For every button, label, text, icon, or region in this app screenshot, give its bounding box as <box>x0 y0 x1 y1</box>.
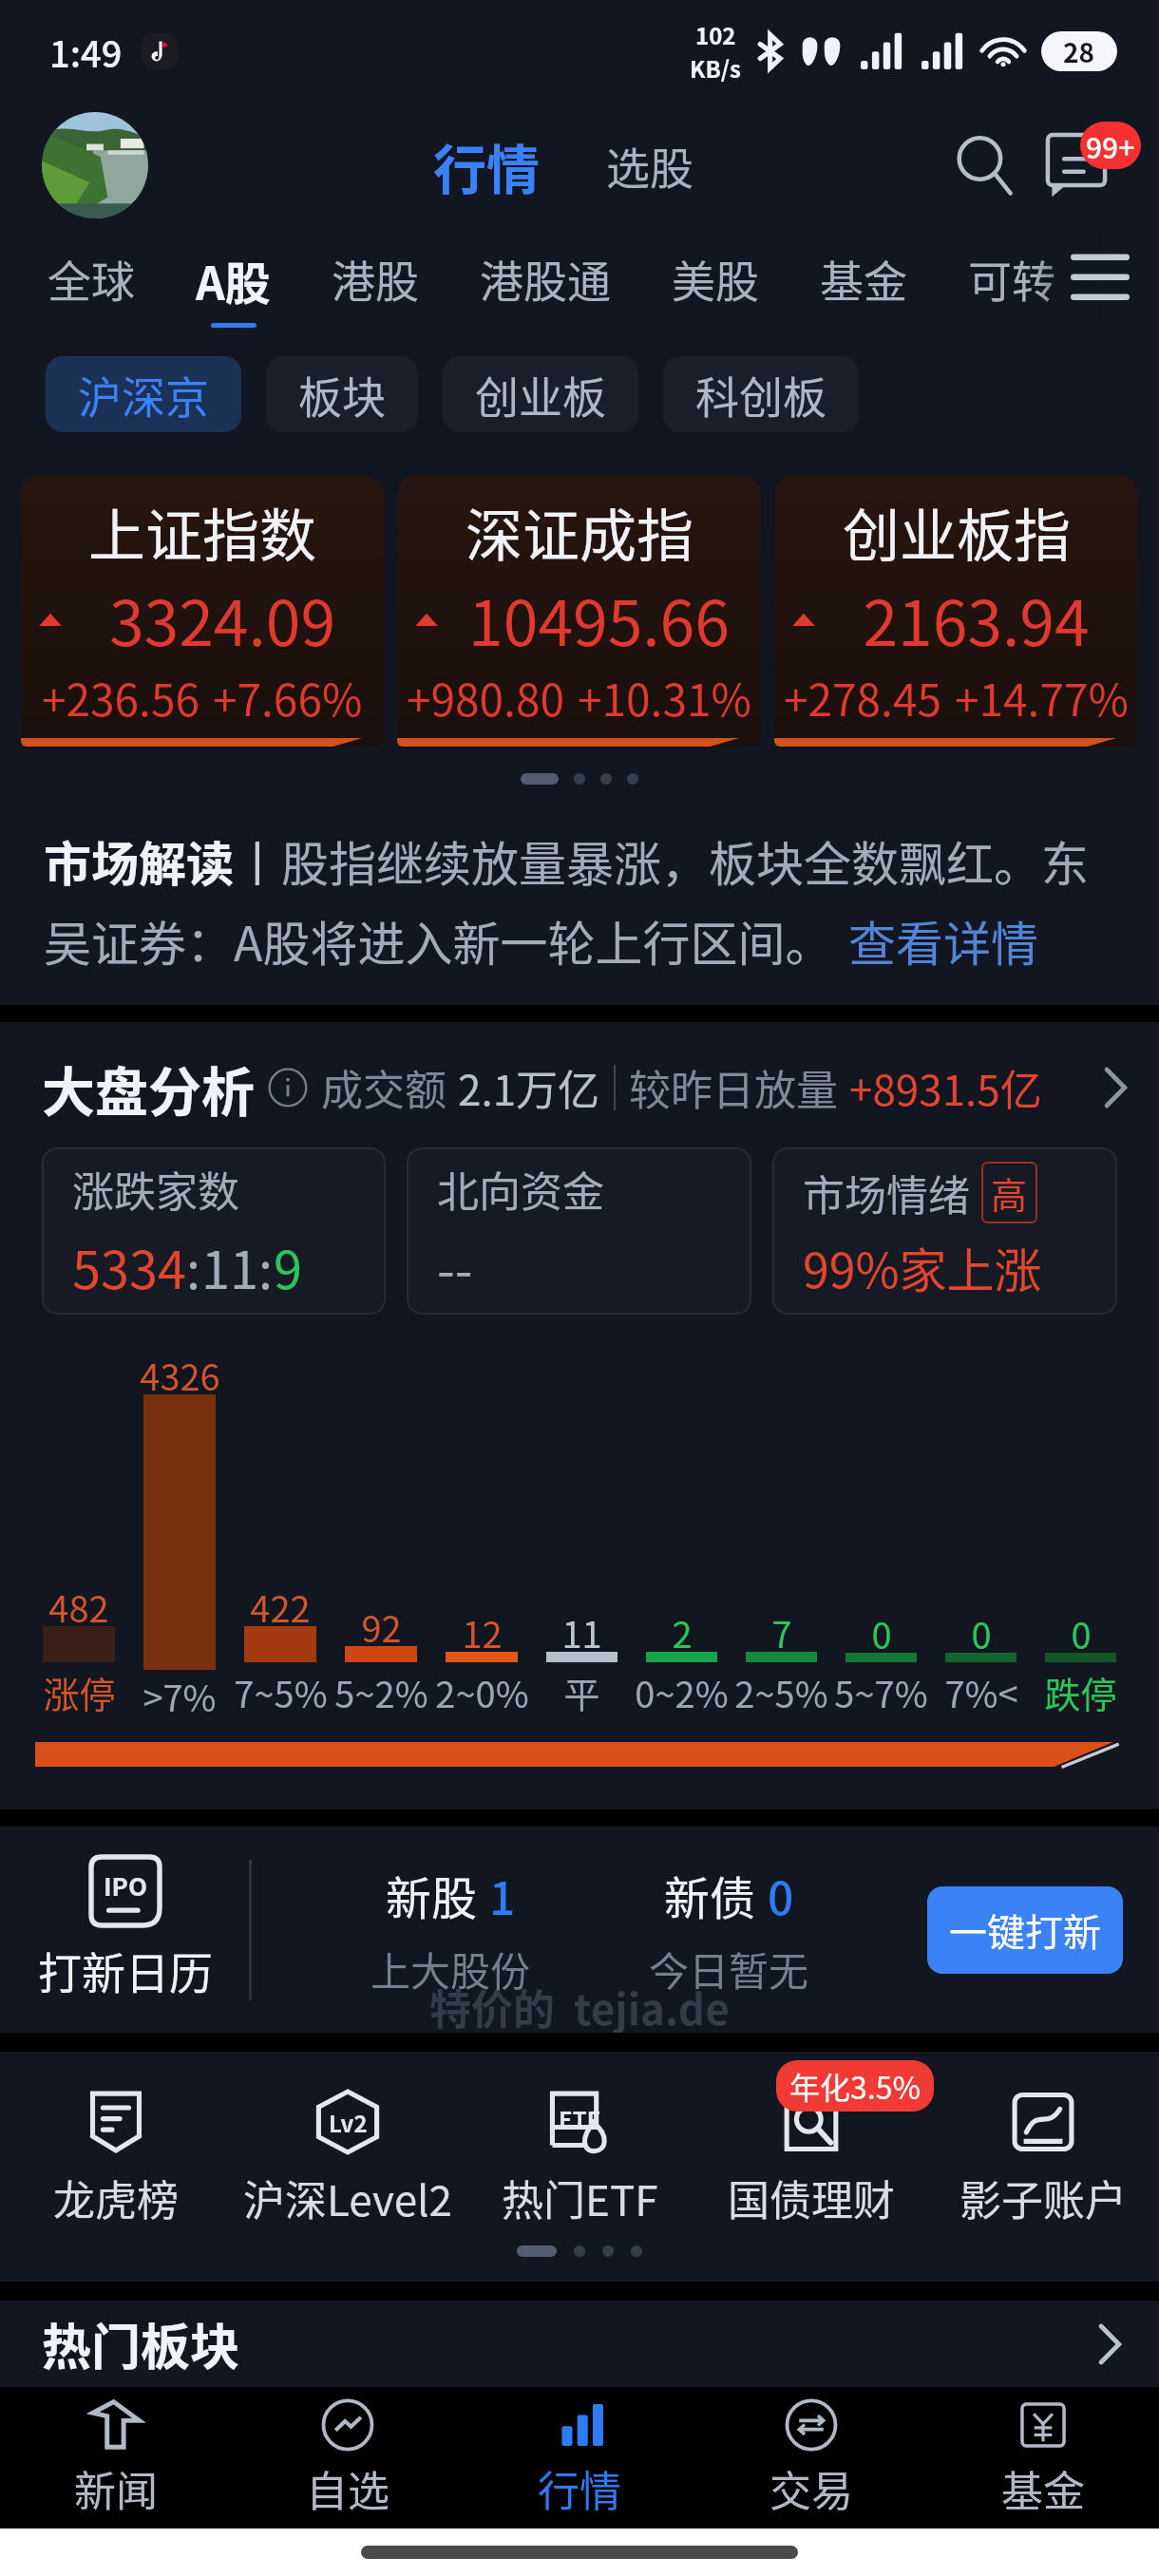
staticText: 热门板块 <box>42 2308 240 2379</box>
staticText: 可转 <box>968 247 1055 311</box>
staticText: 7~5% <box>234 1666 328 1718</box>
button[interactable]: 可转 <box>938 228 1086 328</box>
button[interactable]: ETF <box>464 2090 695 2228</box>
staticText: 跌停 <box>1044 1666 1117 1718</box>
staticText: 新债 <box>664 1862 756 1928</box>
staticText: 板块 <box>298 363 386 426</box>
staticText: +7.66% <box>213 666 363 729</box>
button[interactable]: 基金 <box>927 2387 1159 2529</box>
button[interactable]: 深证成指 <box>397 475 761 747</box>
button[interactable]: 大盘分析 <box>42 1047 1129 1128</box>
button[interactable]: 创业板指 <box>774 475 1138 747</box>
button[interactable]: 沪深京 <box>46 356 241 432</box>
staticText: 28 <box>1063 32 1095 71</box>
staticText: 查看详情 <box>848 906 1038 975</box>
staticText: 沪深京 <box>78 363 209 426</box>
staticText: +10.31% <box>578 666 751 729</box>
staticText: : <box>186 1229 201 1303</box>
button[interactable]: 市场情绪 <box>772 1147 1117 1315</box>
button[interactable]: 选股 <box>600 134 699 198</box>
button[interactable]: Profile <box>42 112 148 218</box>
staticText: 9 <box>274 1229 302 1303</box>
button[interactable]: 行情 <box>464 2387 695 2529</box>
button[interactable]: 热门板块 <box>42 2301 1123 2387</box>
button[interactable]: 板块 <box>266 356 418 432</box>
staticText: 今日暂无 <box>649 1940 809 1998</box>
staticText: 2 <box>672 1606 693 1650</box>
staticText: 11 <box>201 1229 258 1303</box>
staticText: 11 <box>561 1606 602 1650</box>
staticText: 市场解读 <box>44 826 234 895</box>
staticText: 较昨日放量 <box>629 1057 838 1118</box>
button[interactable]: 龙虎榜 <box>0 2090 232 2228</box>
staticText: 上证指数 <box>88 490 316 573</box>
staticText: -- <box>437 1229 473 1303</box>
button[interactable]: 查看详情 <box>848 906 1038 975</box>
staticText: 全球 <box>47 247 135 311</box>
staticText: 1 <box>489 1862 516 1928</box>
button[interactable]: Lv2 <box>232 2090 464 2228</box>
staticText: 1:49 <box>49 26 123 78</box>
staticText: 基金 <box>1001 2458 1085 2519</box>
staticText: 2~0% <box>435 1666 529 1718</box>
staticText: 一键打新 <box>949 1903 1101 1958</box>
button[interactable]: 行情 <box>427 127 545 204</box>
button[interactable]: Messages <box>1046 103 1107 228</box>
button[interactable]: 创业板 <box>443 356 638 432</box>
staticText: 上大股份 <box>370 1940 531 1998</box>
button[interactable]: 全球 <box>17 228 165 328</box>
staticText: >7% <box>142 1670 217 1721</box>
button[interactable]: 自选 <box>232 2387 464 2529</box>
button[interactable]: More tabs <box>1064 238 1136 311</box>
staticText: +980.80 <box>407 666 564 729</box>
button[interactable]: IPO <box>38 1857 213 2002</box>
staticText: 大盘分析 <box>42 1050 255 1127</box>
staticText: 平 <box>563 1666 600 1718</box>
staticText: 自选 <box>306 2458 389 2519</box>
staticText: 年化3.5% <box>789 2064 921 2108</box>
button[interactable]: 港股 <box>301 228 449 328</box>
button[interactable]: 涨跌家数 <box>42 1147 386 1315</box>
button[interactable]: 科创板 <box>663 356 859 432</box>
button[interactable]: Search <box>945 125 1025 205</box>
button[interactable]: 基金 <box>789 228 938 328</box>
button[interactable]: 新闻 <box>0 2387 232 2529</box>
staticText: 龙虎榜 <box>53 2168 179 2228</box>
staticText: 4326 <box>140 1349 220 1392</box>
staticText: 市场情绪 <box>803 1163 970 1223</box>
staticText: 0 <box>768 1862 794 1928</box>
staticText: +236.56 <box>42 666 199 729</box>
staticText: 2163.94 <box>826 573 1127 664</box>
staticText: 102 <box>695 18 736 51</box>
staticText: 基金 <box>820 247 907 311</box>
button[interactable]: 港股通 <box>449 228 641 328</box>
button[interactable]: 北向资金 <box>407 1147 751 1315</box>
staticText: 港股通 <box>480 247 611 311</box>
staticText: 影子账户 <box>959 2168 1127 2228</box>
button[interactable]: 年化3.5% <box>695 2090 927 2228</box>
staticText: 成交额 <box>321 1057 446 1118</box>
button[interactable]: 一键打新 <box>927 1886 1123 1974</box>
staticText: 创业板 <box>475 363 606 426</box>
staticText: 2~5% <box>734 1666 828 1718</box>
staticText: 99+ <box>1086 125 1135 166</box>
staticText: 行情 <box>538 2458 621 2519</box>
staticText: 国债理财 <box>728 2168 895 2228</box>
button[interactable]: 交易 <box>695 2387 927 2529</box>
staticText: Lv2 <box>329 2106 368 2139</box>
staticText: +14.77% <box>955 666 1129 729</box>
staticText: KB/s <box>690 51 741 85</box>
button[interactable]: 影子账户 <box>927 2090 1159 2228</box>
staticText: 打新日历 <box>38 1939 213 2002</box>
button[interactable]: A股 <box>165 228 301 328</box>
staticText: 0 <box>871 1607 892 1651</box>
button[interactable]: 美股 <box>641 228 789 328</box>
staticText: 92 <box>361 1601 402 1644</box>
staticText: 涨停 <box>43 1666 116 1718</box>
staticText: 特价的 tejia.de <box>429 1977 730 2037</box>
staticText: 沪深Level2 <box>243 2168 452 2228</box>
staticText: 美股 <box>672 247 759 311</box>
staticText: 新股 <box>386 1862 478 1928</box>
staticText: +8931.5亿 <box>849 1057 1042 1118</box>
button[interactable]: 上证指数 <box>21 475 384 747</box>
